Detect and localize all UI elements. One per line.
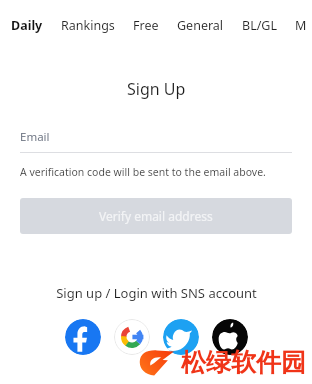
button[interactable]: General [176,15,225,36]
staticText: Rankings [61,17,115,34]
staticText: Sign Up [127,78,186,100]
button[interactable]: BL/GL [241,15,278,36]
staticText: Matu [295,17,311,34]
button[interactable]: Daily [10,15,44,36]
staticText: BL/GL [242,17,277,34]
button[interactable]: Verify email address [20,198,292,234]
staticText: Email [20,129,50,145]
button[interactable]: Sign in with Google [114,319,150,355]
button[interactable]: Sign in with Apple [212,319,248,355]
staticText: Sign up / Login with SNS account [56,284,257,302]
staticText: Free [133,17,159,34]
staticText: Verify email address [99,208,213,224]
staticText: A verification code will be sent to the … [20,165,266,179]
button[interactable]: Free [132,15,160,36]
button[interactable]: Rankings [60,15,116,36]
staticText: General [177,17,224,34]
button[interactable]: Email [20,129,292,153]
button[interactable]: Matu [294,15,312,36]
staticText: 松绿软件园 [181,347,306,378]
button[interactable]: Sign in with Twitter [163,319,199,355]
staticText: Daily [11,17,43,34]
button[interactable]: Sign in with Facebook [65,319,101,355]
